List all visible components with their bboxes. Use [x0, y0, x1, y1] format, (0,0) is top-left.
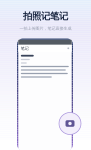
- staticText: 一拍上传图片，笔记直接生成: [19, 26, 71, 31]
- staticText: 拍照记笔记: [23, 10, 68, 22]
- staticText: 笔记: [21, 46, 29, 51]
- button[interactable]: Take photo: [59, 112, 81, 134]
